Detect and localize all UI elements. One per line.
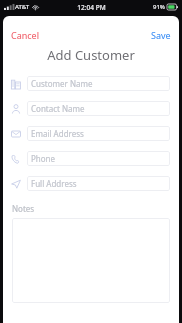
button[interactable]: Save <box>143 27 179 43</box>
staticText: Contact Name <box>31 103 85 114</box>
other: Contact Name <box>9 102 23 116</box>
staticText: Customer Name <box>31 78 93 89</box>
staticText: Notes <box>12 203 35 214</box>
staticText: Email Address <box>31 128 84 139</box>
other: Phone <box>9 152 23 166</box>
staticText: Phone <box>31 153 56 164</box>
other: Email Address <box>9 127 23 141</box>
button[interactable] <box>12 218 170 303</box>
staticText: Full Address <box>31 178 77 189</box>
button[interactable]: Phone <box>9 151 170 166</box>
staticText: Add Customer <box>3 46 179 64</box>
other: Full Address <box>9 177 23 191</box>
button[interactable]: Email Address <box>9 126 170 141</box>
staticText: Save <box>151 29 171 41</box>
button[interactable]: Full Address <box>9 176 170 191</box>
staticText: Cancel <box>11 29 40 41</box>
button[interactable]: Contact Name <box>9 101 170 116</box>
staticText: 91% <box>153 3 165 11</box>
staticText: AT&T <box>15 3 30 11</box>
button[interactable]: Customer Name <box>9 76 170 91</box>
other: Customer Name <box>9 77 23 91</box>
staticText: 12:04 PM <box>77 3 106 12</box>
button[interactable]: Cancel <box>3 27 48 43</box>
